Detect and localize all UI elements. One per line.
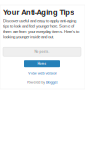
staticText: Your Anti-Aging Tips xyxy=(3,8,74,16)
staticText: View web version xyxy=(28,71,57,75)
staticText: Blogger. xyxy=(46,80,58,84)
staticText: Discover useful and easy to apply anti-a… xyxy=(3,18,79,39)
button[interactable]: View web version xyxy=(0,70,85,76)
button[interactable]: Home xyxy=(24,60,60,67)
staticText: Home xyxy=(37,62,46,65)
staticText: No posts. xyxy=(34,50,49,53)
staticText: Powered by xyxy=(27,80,45,84)
button[interactable]: Blogger. xyxy=(46,80,58,84)
